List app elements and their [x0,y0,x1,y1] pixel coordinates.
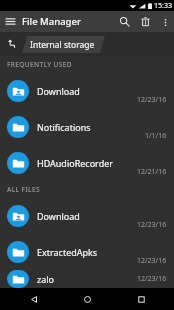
button[interactable]: Download [0,198,174,234]
button[interactable]: zalo [0,270,174,288]
button[interactable]: HDAudioRecorder [0,145,174,181]
button[interactable]: Up one level [0,32,22,56]
staticText: Download [37,85,80,97]
staticText: HDAudioRecorder [37,157,113,169]
button[interactable]: Recent apps [121,288,161,310]
staticText: ALL FILES [7,185,40,194]
staticText: 12/23/16 [137,274,167,284]
button[interactable]: ExtractedApks [0,234,174,270]
staticText: 15:33 [154,1,172,11]
staticText: 12/23/16 [137,256,167,266]
staticText: 1/1/16 [145,131,167,141]
staticText: zalo [37,273,55,285]
button[interactable]: Open navigation drawer [0,11,21,32]
staticText: Internal storage [30,39,95,51]
staticText: 12/23/16 [137,95,167,105]
staticText: File Manager [22,15,81,28]
staticText: Download [37,210,80,222]
button[interactable]: Download [0,73,174,109]
staticText: Notifications [37,121,91,133]
button[interactable]: Home [67,288,107,310]
button[interactable]: Notifications [0,109,174,145]
button[interactable]: Back [14,288,54,310]
staticText: 12/23/16 [137,220,167,230]
button[interactable]: More options [156,13,174,31]
button[interactable]: Delete [135,11,156,32]
button[interactable]: Search [114,11,135,32]
button[interactable]: Internal storage [22,36,105,53]
staticText: FREQUENTLY USED [7,60,72,69]
staticText: ExtractedApks [37,246,98,258]
staticText: 12/21/16 [137,167,167,177]
